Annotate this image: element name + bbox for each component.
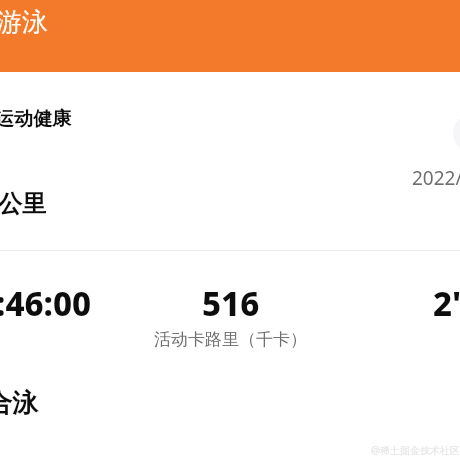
button[interactable]: :46:00 <box>0 281 92 326</box>
staticText: :46:00 <box>0 281 92 326</box>
button[interactable]: 2' <box>433 281 460 326</box>
staticText: 516 <box>202 281 260 326</box>
staticText: 2022/ <box>412 165 460 191</box>
staticText: 游泳 <box>0 6 48 39</box>
staticText: 公里 <box>0 189 46 219</box>
button[interactable]: 运动健康 <box>0 91 460 147</box>
button[interactable]: 游泳 <box>0 0 460 72</box>
staticText: @稀土掘金技术社区 <box>371 443 460 457</box>
button[interactable]: 516 <box>154 281 307 350</box>
staticText: 合泳 <box>0 387 38 420</box>
staticText: 活动卡路里（千卡） <box>154 329 307 350</box>
button[interactable]: 合泳 <box>0 377 460 429</box>
staticText: 2' <box>433 281 460 326</box>
staticText: 运动健康 <box>0 107 71 131</box>
button[interactable]: Share <box>453 114 460 153</box>
